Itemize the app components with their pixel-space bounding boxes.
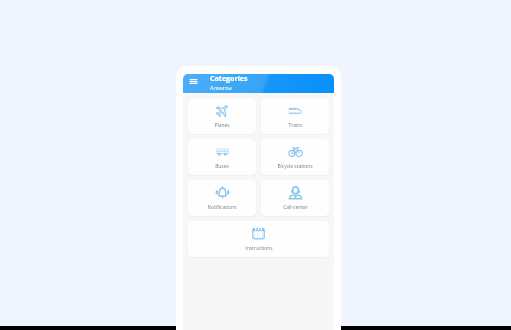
staticText: Instructions [245, 245, 273, 252]
staticText: Categories [210, 74, 248, 83]
staticText: Buses [215, 163, 229, 170]
button[interactable]: Call-center [261, 180, 329, 216]
button[interactable]: Open navigation menu [183, 74, 201, 92]
staticText: Call-center [283, 204, 308, 211]
staticText: Bicycle stations [277, 163, 313, 170]
button[interactable]: Trains [261, 98, 329, 134]
button[interactable]: Instructions [188, 221, 329, 257]
staticText: Алматы [210, 84, 232, 92]
button[interactable]: Planes [188, 98, 256, 134]
button[interactable]: Notifications [188, 180, 256, 216]
button[interactable]: Buses [188, 139, 256, 175]
staticText: Trains [288, 122, 303, 129]
button[interactable]: Bicycle stations [261, 139, 329, 175]
staticText: Planes [214, 122, 230, 129]
staticText: Notifications [207, 204, 237, 211]
